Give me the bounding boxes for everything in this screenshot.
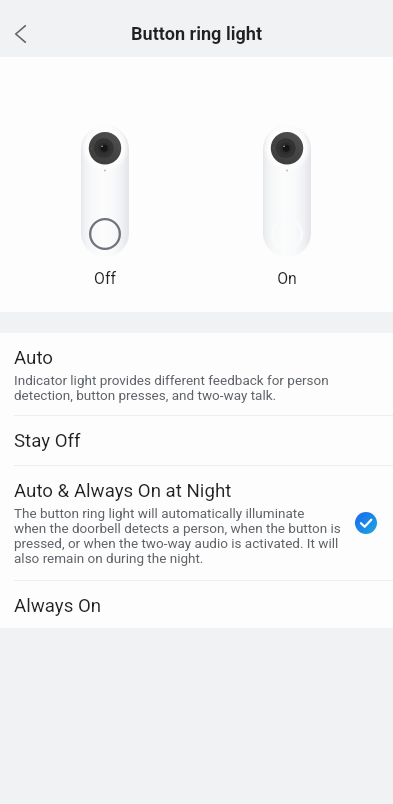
staticText: Off [94,269,116,288]
staticText: On [277,269,297,288]
button[interactable]: Auto [0,333,393,415]
button[interactable]: Back [0,12,42,56]
button[interactable]: Auto & Always On at Night [0,466,393,580]
button[interactable]: Always On [0,581,393,628]
staticText: Indicator light provides different feedb… [14,372,329,403]
staticText: Auto & Always On at Night [14,480,232,502]
staticText: Stay Off [14,430,81,452]
staticText: Always On [14,595,102,617]
staticText: Button ring light [131,23,263,44]
staticText: The button ring light will automatically… [14,505,341,566]
staticText: Auto [14,347,53,369]
button[interactable]: Stay Off [0,416,393,465]
